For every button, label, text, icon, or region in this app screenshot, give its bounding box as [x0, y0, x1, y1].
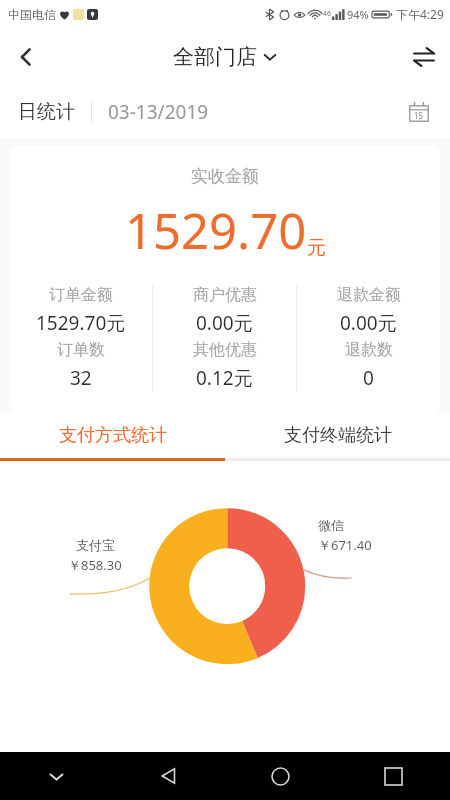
- staticText: 退款金额: [337, 285, 401, 305]
- staticText: 支付宝: [76, 537, 115, 553]
- staticText: 0.00元: [340, 310, 397, 336]
- button[interactable]: 全部门店: [173, 44, 277, 70]
- button[interactable]: 支付方式统计: [0, 412, 225, 458]
- staticText: 03-13/2019: [108, 99, 209, 125]
- staticText: 0.12元: [196, 365, 253, 391]
- staticText: 下午4:29: [396, 6, 444, 22]
- staticText: 商户优惠: [193, 285, 257, 305]
- staticText: 支付终端统计: [284, 424, 392, 447]
- button[interactable]: 商户优惠: [153, 280, 296, 396]
- button[interactable]: Switch store: [398, 31, 450, 83]
- button[interactable]: Back: [0, 31, 52, 83]
- staticText: ￥858.30: [68, 556, 122, 574]
- button[interactable]: 退款金额: [297, 280, 440, 396]
- staticText: 94%: [347, 7, 369, 22]
- staticText: 15: [414, 110, 424, 121]
- staticText: ￥671.40: [318, 536, 372, 554]
- staticText: 元: [307, 236, 326, 260]
- button[interactable]: 日统计: [18, 100, 75, 124]
- staticText: 日统计: [18, 100, 75, 124]
- button[interactable]: Pick date: [402, 95, 436, 129]
- button[interactable]: Hide: [0, 752, 112, 800]
- staticText: 中国电信: [8, 7, 56, 22]
- staticText: 46: [323, 9, 332, 19]
- staticText: 32: [70, 365, 92, 391]
- staticText: 0.00元: [196, 310, 253, 336]
- staticText: 1529.70: [125, 197, 307, 264]
- staticText: 支付方式统计: [59, 424, 167, 447]
- staticText: 订单数: [57, 340, 105, 360]
- staticText: 订单金额: [49, 285, 113, 305]
- button[interactable]: Recents: [337, 752, 450, 800]
- staticText: 微信: [318, 517, 344, 533]
- button[interactable]: Back: [112, 752, 224, 800]
- button[interactable]: 03-13/2019: [108, 99, 209, 125]
- staticText: 1529.70元: [36, 310, 126, 336]
- staticText: 退款数: [345, 340, 393, 360]
- staticText: 其他优惠: [193, 340, 257, 360]
- staticText: 全部门店: [173, 44, 257, 70]
- button[interactable]: 支付终端统计: [225, 412, 450, 458]
- button[interactable]: 订单金额: [10, 280, 152, 396]
- staticText: 实收金额: [10, 166, 440, 187]
- staticText: 0: [363, 365, 374, 391]
- button[interactable]: Home: [224, 752, 337, 800]
